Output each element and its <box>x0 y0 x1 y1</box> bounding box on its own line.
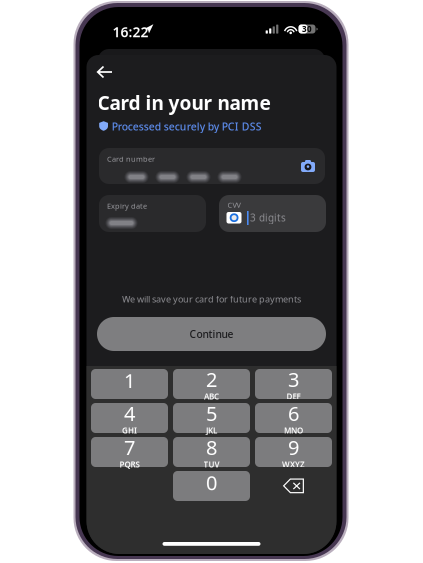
button[interactable]: Scan card <box>296 154 320 178</box>
button[interactable]: Back <box>90 58 120 86</box>
staticText: 8 <box>206 434 217 460</box>
button[interactable]: 7 <box>91 437 168 467</box>
staticText: WXYZ <box>282 459 305 470</box>
staticText: Processed securely by PCI DSS <box>112 119 262 133</box>
button[interactable]: Continue <box>97 317 326 351</box>
staticText: CVV <box>227 200 240 210</box>
button[interactable]: 9 <box>255 437 332 467</box>
staticText: DEF <box>286 391 300 402</box>
button[interactable]: 2 <box>173 369 250 399</box>
staticText: 2 <box>206 366 217 392</box>
staticText: 3 digits <box>250 211 286 224</box>
button[interactable]: 3 <box>255 369 332 399</box>
staticText: 3 <box>288 366 299 392</box>
button[interactable]: 8 <box>173 437 250 467</box>
staticText: MNO <box>284 425 303 436</box>
staticText: 7 <box>124 434 135 460</box>
staticText: ABC <box>204 391 219 402</box>
staticText: We will save your card for future paymen… <box>122 293 301 305</box>
staticText: Expiry date <box>107 201 147 211</box>
staticText: 4 <box>124 400 135 426</box>
staticText: Card number <box>107 154 155 164</box>
staticText: 1 <box>124 367 135 394</box>
button[interactable]: Delete <box>255 471 332 501</box>
staticText: TUV <box>203 459 219 470</box>
button[interactable]: 0 <box>173 471 250 501</box>
staticText: 9 <box>288 434 299 460</box>
staticText: 0 <box>206 469 217 496</box>
staticText: 16:22 <box>112 23 148 41</box>
button[interactable]: 4 <box>91 403 168 433</box>
button[interactable]: 1 <box>91 369 168 399</box>
staticText: 30 <box>302 24 312 34</box>
button[interactable]: 6 <box>255 403 332 433</box>
staticText: 5 <box>206 400 217 426</box>
button[interactable]: 5 <box>173 403 250 433</box>
staticText: Continue <box>189 327 233 341</box>
staticText: 6 <box>288 400 299 426</box>
staticText: JKL <box>206 425 217 436</box>
staticText: PQRS <box>119 459 139 470</box>
staticText: Card in your name <box>97 90 270 115</box>
staticText: GHI <box>122 425 137 436</box>
